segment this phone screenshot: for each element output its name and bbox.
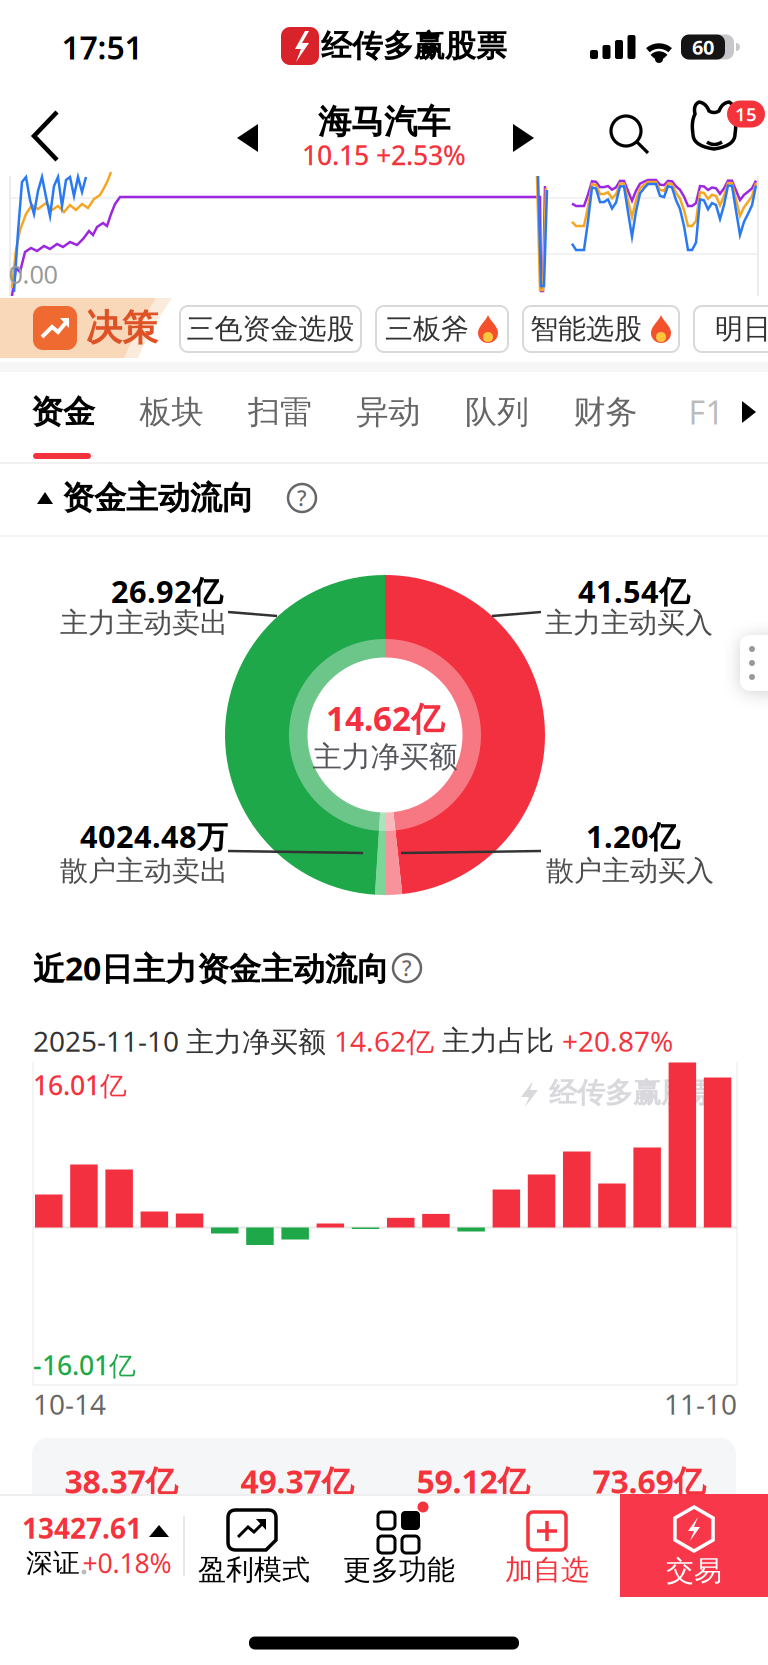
staticText: 散户主动卖出 (60, 854, 228, 888)
staticText: 49.37亿 (240, 1460, 353, 1502)
staticText: 主力主动买入 (545, 606, 713, 640)
button[interactable]: 13427.61 (5, 1500, 185, 1590)
button[interactable]: 三板斧 (376, 306, 508, 352)
button[interactable]: 队列 (449, 380, 545, 444)
button[interactable]: 板块 (123, 380, 219, 444)
staticText: 10.15 +2.53% (302, 137, 466, 173)
button[interactable] (602, 106, 658, 162)
staticText: 73.69亿 (592, 1460, 705, 1502)
staticText: +0.18% (82, 1545, 171, 1581)
button[interactable]: 明日榜 (694, 306, 768, 352)
button[interactable]: 扫雷 (232, 380, 328, 444)
button[interactable]: ? (390, 951, 424, 985)
staticText: 0.00 (8, 257, 57, 291)
button[interactable]: 加自选 (487, 1500, 607, 1590)
staticText: 主力主动卖出 (60, 606, 228, 640)
staticText: 60 (692, 34, 714, 60)
button[interactable]: 盈利模式 (184, 1500, 324, 1590)
staticText: 资金主动流向 (62, 478, 254, 518)
staticText: ? (297, 484, 307, 512)
button[interactable] (16, 106, 76, 166)
staticText: 17:51 (61, 26, 142, 68)
staticText: 4024.48万 (80, 816, 228, 856)
staticText: 加自选 (505, 1553, 589, 1587)
staticText: 14.62亿 (326, 696, 444, 740)
staticText: 主力占比 (434, 1024, 562, 1058)
staticText: ? (402, 954, 412, 982)
staticText: 交易 (666, 1554, 722, 1588)
button[interactable]: 15 (680, 90, 768, 170)
button[interactable]: 智能选股 (523, 306, 679, 352)
staticText: 16.01亿 (33, 1067, 127, 1103)
staticText: 38.37亿 (64, 1460, 177, 1502)
staticText: +20.87% (562, 1022, 673, 1060)
staticText: 扫雷 (248, 392, 312, 432)
staticText: 1.20亿 (586, 816, 680, 856)
staticText: 10-14 (33, 1385, 106, 1423)
staticText: 经传多赢股票 (549, 1076, 717, 1110)
button[interactable]: 财务 (557, 380, 653, 444)
button[interactable] (733, 392, 763, 432)
staticText: 队列 (465, 392, 529, 432)
staticText: 13427.61 (22, 1509, 142, 1547)
staticText: 15 (735, 102, 757, 126)
staticText: 14.62亿 (334, 1022, 434, 1060)
staticText: 财务 (573, 392, 637, 432)
staticText: 智能选股 (530, 312, 642, 346)
staticText: -16.01亿 (33, 1347, 136, 1383)
button[interactable] (503, 116, 543, 160)
staticText: 26.92亿 (111, 571, 223, 611)
staticText: 更多功能 (343, 1553, 455, 1587)
staticText: 近20日主力资金主动流向 (33, 947, 389, 989)
staticText: 深证 (26, 1547, 80, 1579)
button[interactable]: F1 (674, 380, 738, 444)
button[interactable]: ? (285, 481, 319, 515)
button[interactable]: 交易 (620, 1494, 768, 1597)
button[interactable]: 三色资金选股 (180, 306, 361, 352)
button[interactable]: 更多功能 (329, 1500, 469, 1590)
staticText: 59.12亿 (416, 1460, 529, 1502)
button[interactable] (722, 628, 768, 698)
button[interactable]: 资金 (15, 380, 111, 444)
staticText: F1 (688, 391, 723, 433)
staticText: 2025-11-10 主力净买额 (33, 1022, 334, 1060)
staticText: 决策 (86, 306, 158, 350)
staticText: 三色资金选股 (186, 312, 354, 346)
staticText: 散户主动买入 (546, 854, 714, 888)
staticText: 资金 (31, 392, 95, 432)
button[interactable]: 决策 (0, 297, 170, 359)
button[interactable] (228, 116, 268, 160)
staticText: 主力净买额 (312, 739, 457, 775)
staticText: 经传多赢股票 (321, 27, 507, 65)
staticText: 明日榜 (715, 312, 768, 346)
staticText: 盈利模式 (198, 1553, 310, 1587)
staticText: 三板斧 (385, 312, 469, 346)
staticText: 板块 (139, 392, 203, 432)
button[interactable]: 异动 (340, 380, 436, 444)
staticText: 41.54亿 (578, 571, 690, 611)
staticText: 11-10 (664, 1385, 737, 1423)
staticText: 异动 (356, 392, 420, 432)
staticText: 海马汽车 (318, 101, 450, 142)
